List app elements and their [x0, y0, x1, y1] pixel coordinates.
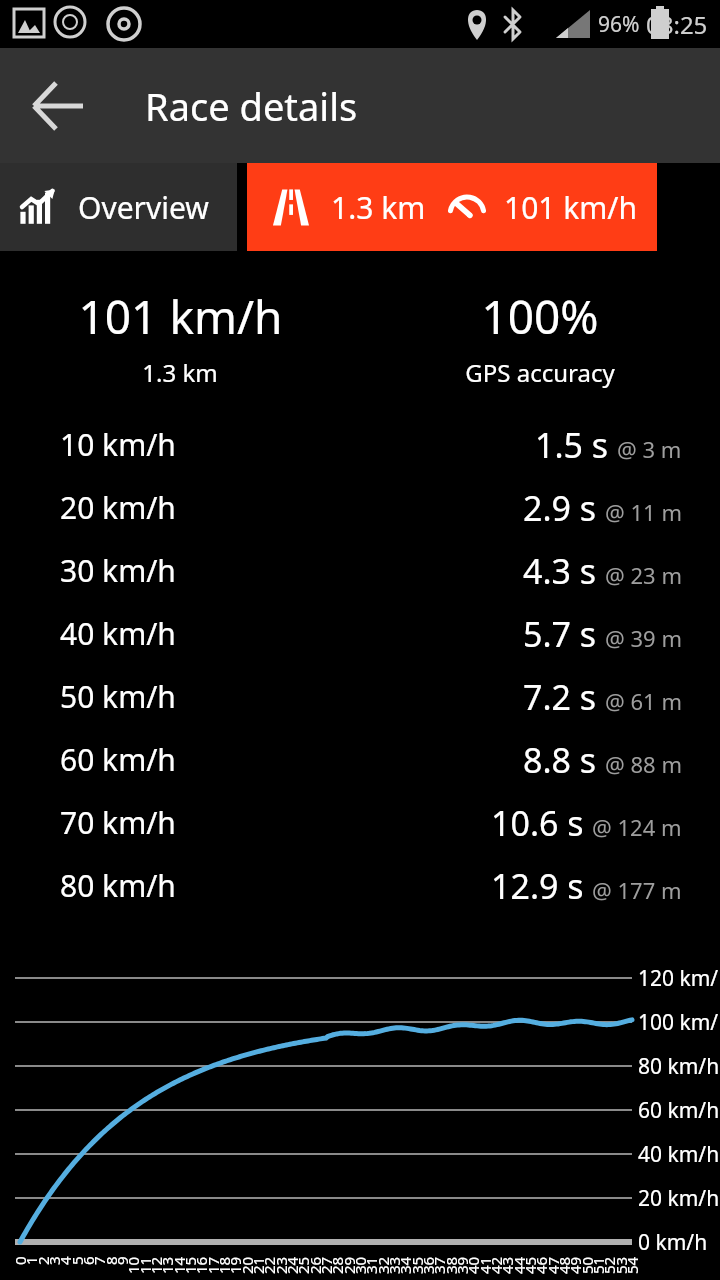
staticText: 10.6 s	[491, 800, 584, 846]
button[interactable]: 20 km/h	[0, 476, 720, 539]
staticText: Overview	[78, 187, 209, 228]
staticText: Race details	[145, 80, 358, 132]
staticText: 4.3 s	[523, 548, 597, 594]
staticText: 10 km/h	[60, 424, 176, 465]
staticText: @ 3 m	[617, 434, 682, 464]
button[interactable]: 10 km/h	[0, 413, 720, 476]
staticText: 60 km/h	[60, 739, 176, 780]
button[interactable]: 50 km/h	[0, 665, 720, 728]
staticText: 101 km/h	[78, 285, 283, 348]
staticText: 1.3 km	[331, 187, 426, 228]
button[interactable]: 1.3 km	[247, 163, 657, 251]
staticText: @ 177 m	[592, 875, 682, 905]
staticText: @ 23 m	[605, 560, 682, 590]
staticText: @ 124 m	[592, 812, 682, 842]
staticText: 1.5 s	[535, 422, 609, 468]
button[interactable]: 70 km/h	[0, 791, 720, 854]
staticText: 40 km/h	[60, 613, 176, 654]
staticText: 96%	[598, 10, 640, 39]
staticText: 50 km/h	[60, 676, 176, 717]
staticText: @ 61 m	[605, 686, 682, 716]
staticText: 2.9 s	[523, 485, 597, 531]
staticText: 8.8 s	[523, 737, 597, 783]
button[interactable]: 60 km/h	[0, 728, 720, 791]
button[interactable]: Overview	[0, 163, 237, 251]
staticText: 80 km/h	[60, 865, 176, 906]
staticText: 100%	[481, 285, 599, 348]
staticText: 08:25	[646, 8, 708, 41]
button[interactable]: 80 km/h	[0, 854, 720, 917]
button[interactable]: 40 km/h	[0, 602, 720, 665]
staticText: 70 km/h	[60, 802, 176, 843]
staticText: GPS accuracy	[465, 356, 615, 389]
staticText: @ 39 m	[605, 623, 682, 653]
staticText: 1.3 km	[142, 356, 218, 389]
button[interactable]: Back	[18, 66, 98, 146]
staticText: 5.7 s	[523, 611, 597, 657]
staticText: @ 11 m	[605, 497, 682, 527]
button[interactable]: 30 km/h	[0, 539, 720, 602]
staticText: @ 88 m	[605, 749, 682, 779]
staticText: 30 km/h	[60, 550, 176, 591]
staticText: 20 km/h	[60, 487, 176, 528]
staticText: 101 km/h	[504, 187, 638, 228]
staticText: 12.9 s	[491, 863, 584, 909]
staticText: 7.2 s	[523, 674, 597, 720]
